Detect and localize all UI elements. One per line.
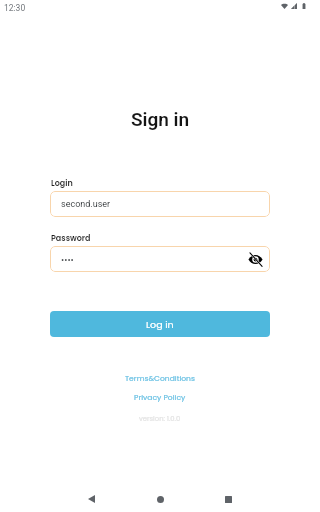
button[interactable]: Log in xyxy=(50,311,270,337)
button[interactable]: Recents xyxy=(210,486,246,512)
button[interactable]: Home xyxy=(142,486,178,512)
staticText: Terms&Conditions xyxy=(125,373,195,384)
button[interactable]: Terms&Conditions xyxy=(0,370,320,386)
button[interactable]: Privacy Policy xyxy=(0,389,320,405)
staticText: Password xyxy=(51,233,91,244)
staticText: Privacy Policy xyxy=(134,392,186,403)
staticText: •••• xyxy=(61,254,74,265)
staticText: second.user xyxy=(61,199,111,210)
staticText: version: 1.0.0 xyxy=(139,414,181,424)
staticText: Login xyxy=(51,178,73,189)
button[interactable]: Show password xyxy=(246,250,264,268)
button[interactable]: Back xyxy=(73,486,109,512)
button[interactable]: •••• xyxy=(50,246,270,272)
staticText: Sign in xyxy=(0,108,320,130)
staticText: Log in xyxy=(146,318,174,331)
button[interactable]: second.user xyxy=(50,191,270,217)
staticText: 12:30 xyxy=(4,3,26,13)
